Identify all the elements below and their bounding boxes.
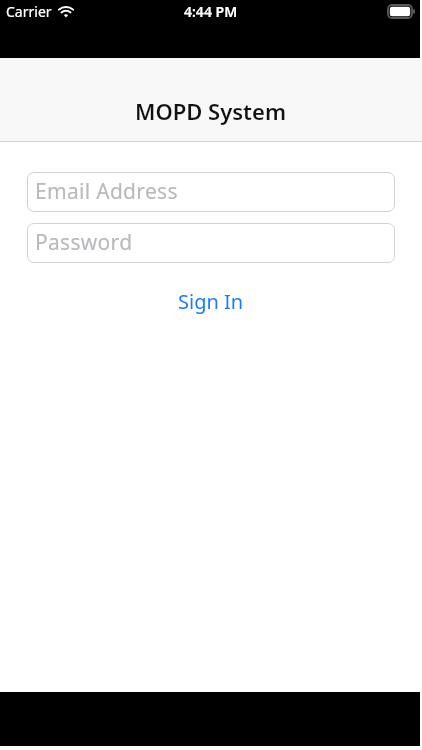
- staticText: Password: [35, 228, 133, 257]
- staticText: MOPD System: [135, 96, 287, 126]
- button[interactable]: Password: [27, 223, 395, 263]
- staticText: Email Address: [35, 177, 178, 206]
- staticText: Sign In: [178, 288, 244, 315]
- staticText: Carrier: [6, 2, 52, 21]
- staticText: 4:44 PM: [184, 2, 238, 21]
- button[interactable]: Sign In: [170, 286, 252, 317]
- button[interactable]: Email Address: [27, 172, 395, 212]
